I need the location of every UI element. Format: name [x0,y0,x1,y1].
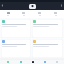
button[interactable]: Home [1,59,14,64]
button[interactable]: Add [27,59,39,64]
button[interactable]: Stat 0 [1,11,15,17]
button[interactable]: Card 3 [32,39,63,58]
button[interactable]: Card 2 [1,39,31,58]
button[interactable]: Card 1 [32,19,63,38]
button[interactable]: Profile [29,4,36,9]
button[interactable]: Stat 3 [48,11,63,17]
button[interactable]: Card 0 [1,19,31,38]
button[interactable]: More options [60,4,63,7]
button[interactable]: Profile [51,59,63,64]
button[interactable]: Stat 1 [16,11,31,17]
button[interactable]: Stat 2 [32,11,47,17]
button[interactable]: Back [1,4,4,7]
button[interactable]: Search [14,59,27,64]
button[interactable]: Alerts [39,59,51,64]
